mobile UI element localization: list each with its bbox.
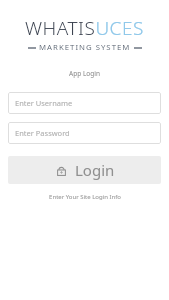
button[interactable]: Enter Username [8,92,161,114]
button[interactable]: Enter Your Site Login Info [49,193,121,201]
button[interactable]: Lock [8,156,161,184]
staticText: Login [75,160,115,180]
staticText: WHATISUCES [25,15,144,41]
button[interactable]: Enter Password [8,122,161,144]
staticText: MARKETING SYSTEM [39,42,131,53]
staticText: Enter Username [15,98,73,108]
button[interactable]: App Login [69,69,100,78]
other: Lock [55,164,68,177]
staticText: Enter Password [15,128,70,138]
